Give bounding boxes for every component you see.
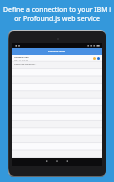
button[interactable]: Create New Connection... bbox=[12, 61, 102, 68]
staticText: or Profound.js web service bbox=[14, 14, 100, 23]
other: Device navigation bar bbox=[12, 158, 102, 166]
button[interactable]: Profound.js Mobile bbox=[12, 48, 102, 55]
staticText: Hardware Login bbox=[14, 56, 29, 59]
staticText: May 1 15 - 3:14 PM bbox=[14, 59, 29, 61]
staticText: Profound.js Mobile bbox=[48, 50, 66, 53]
button[interactable]: Hardware Login bbox=[12, 55, 102, 61]
staticText: Create New Connection... bbox=[14, 63, 37, 66]
staticText: Define a connection to your IBM i bbox=[3, 5, 111, 14]
